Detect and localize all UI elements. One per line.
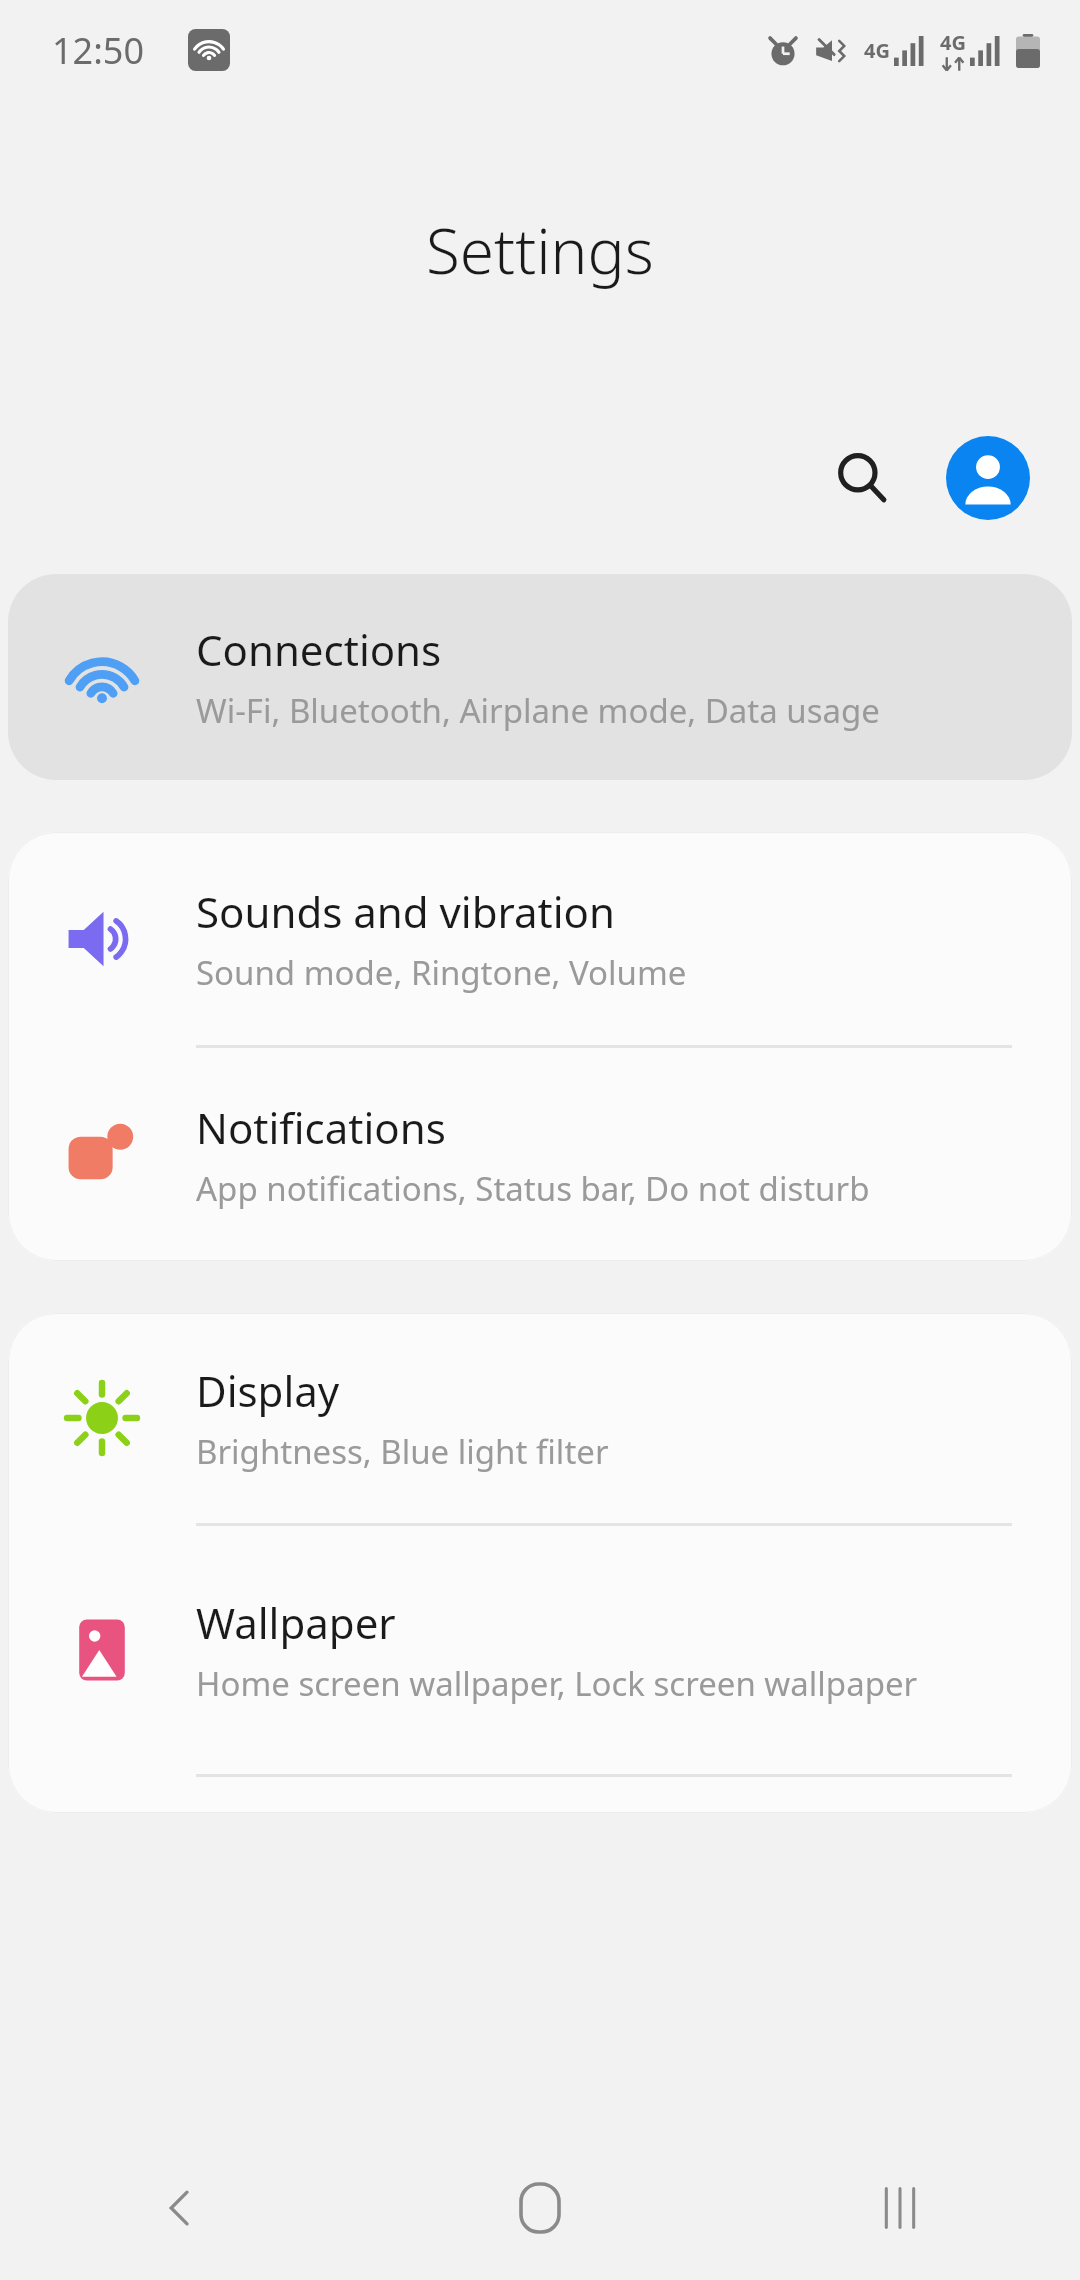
button[interactable]: Home xyxy=(360,2135,720,2280)
button[interactable]: Connections xyxy=(8,574,1072,780)
button[interactable]: Search xyxy=(814,430,910,526)
button[interactable]: Recents xyxy=(720,2135,1080,2280)
button[interactable]: Display xyxy=(8,1313,1072,1523)
staticText: Home screen wallpaper, Lock screen wallp… xyxy=(196,1661,918,1706)
staticText: Wi-Fi, Bluetooth, Airplane mode, Data us… xyxy=(196,688,880,733)
staticText: Connections xyxy=(196,621,442,678)
staticText: 12:50 xyxy=(52,26,145,75)
staticText: Brightness, Blue light filter xyxy=(196,1429,609,1474)
staticText: Wallpaper xyxy=(196,1594,396,1651)
staticText: Settings xyxy=(426,208,654,292)
staticText: Sound mode, Ringtone, Volume xyxy=(196,950,687,995)
button[interactable]: Account xyxy=(940,430,1036,526)
button[interactable]: Wallpaper xyxy=(8,1526,1072,1774)
button[interactable]: Sounds and vibration xyxy=(8,832,1072,1045)
button[interactable]: Notifications xyxy=(8,1048,1072,1261)
staticText: Sounds and vibration xyxy=(196,883,615,940)
staticText: 4G xyxy=(864,37,890,64)
staticText: App notifications, Status bar, Do not di… xyxy=(196,1166,870,1211)
staticText: 4G xyxy=(940,29,966,56)
button[interactable]: Back xyxy=(0,2135,360,2280)
staticText: Display xyxy=(196,1362,340,1419)
staticText: Notifications xyxy=(196,1099,446,1156)
